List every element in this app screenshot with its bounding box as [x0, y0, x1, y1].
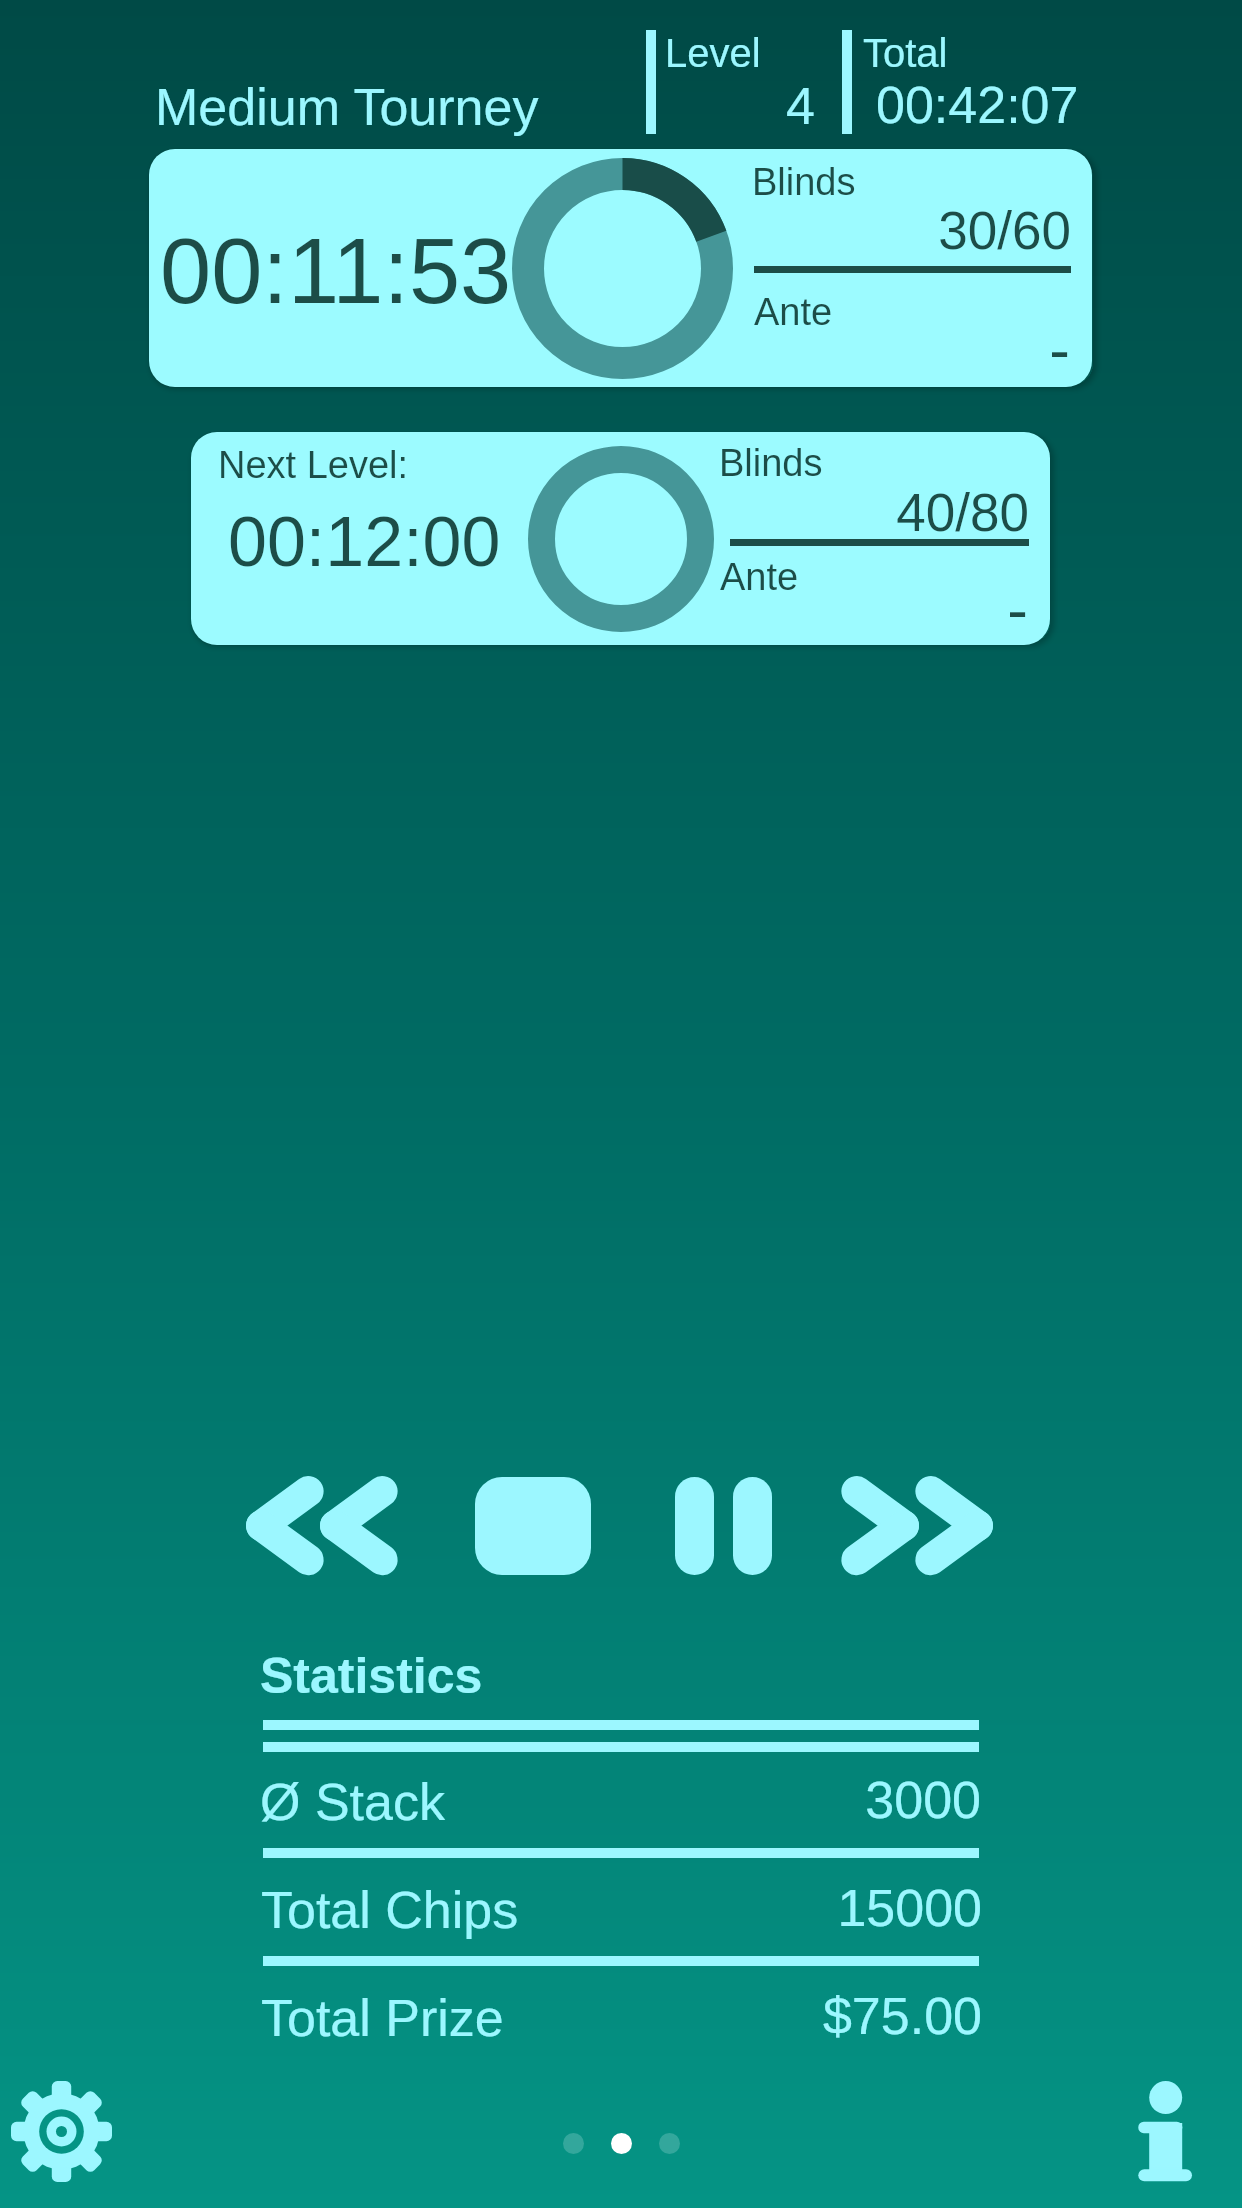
button[interactable]: Settings [11, 2081, 112, 2182]
staticText: Total Chips [261, 1881, 519, 1939]
staticText: Ante [754, 291, 833, 333]
staticText: Ø Stack [260, 1773, 445, 1831]
staticText: Medium Tourney [155, 78, 539, 136]
staticText: $75.00 [182, 1987, 982, 2045]
button[interactable] [149, 149, 1092, 387]
staticText: Total Prize [261, 1989, 504, 2047]
staticText: Blinds [719, 442, 823, 484]
staticText: 15000 [182, 1879, 982, 1937]
staticText: 30/60 [271, 201, 1071, 260]
button[interactable]: Stop [475, 1477, 591, 1575]
staticText: 3000 [181, 1771, 981, 1829]
button[interactable]: Info [1134, 2077, 1196, 2185]
button[interactable] [191, 432, 1050, 645]
button[interactable]: Pause [675, 1477, 772, 1575]
staticText: Ante [720, 556, 799, 598]
button[interactable]: Next level [841, 1476, 995, 1576]
staticText: Statistics [260, 1648, 483, 1704]
staticText: 40/80 [229, 483, 1029, 542]
staticText: Blinds [752, 161, 856, 203]
staticText: 4 [15, 77, 815, 135]
staticText: Level [665, 31, 761, 76]
staticText: - [270, 315, 1070, 384]
staticText: 00:11:53 [160, 220, 512, 323]
staticText: - [228, 575, 1028, 644]
staticText: 00:42:07 [876, 76, 1079, 134]
button[interactable]: Previous level [246, 1476, 398, 1576]
staticText: Total [863, 31, 948, 76]
staticText: Next Level: [218, 444, 409, 486]
staticText: 00:12:00 [228, 503, 501, 581]
